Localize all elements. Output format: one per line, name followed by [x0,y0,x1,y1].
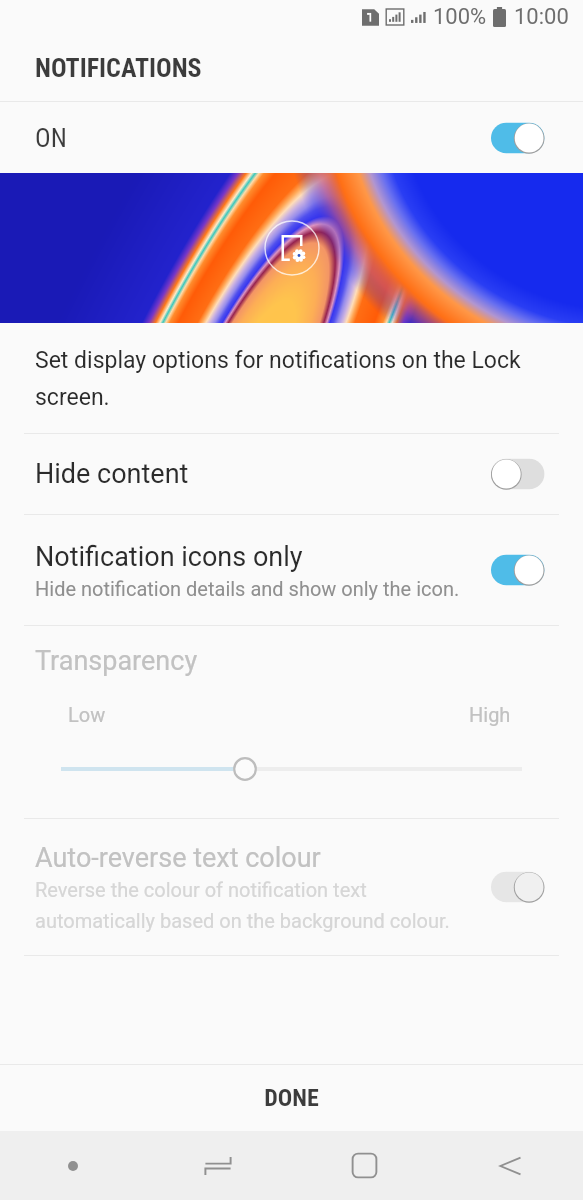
button[interactable]: Recent apps [145,1131,291,1200]
button[interactable]: Notification icons only [0,515,583,625]
staticText: Auto-reverse text colour [35,842,321,874]
staticText: 100% [433,4,487,30]
staticText: Hide content [35,458,189,490]
button[interactable] [0,752,583,786]
staticText: Reverse the colour of notification text … [35,878,450,932]
button[interactable]: Notification indicator [0,1131,145,1200]
staticText: Low [68,703,106,726]
button[interactable]: Home [291,1131,437,1200]
button[interactable]: Preview Lock screen [264,220,320,276]
staticText: 10:00 [514,4,569,30]
button[interactable]: Hide content [0,434,583,514]
button[interactable]: ON [0,102,583,173]
button[interactable]: Back [437,1131,583,1200]
staticText: Notification icons only [35,541,303,573]
staticText: High [469,703,511,726]
staticText: Hide notification details and show only … [35,577,460,600]
staticText: Set display options for notifications on… [35,347,533,410]
staticText: NOTIFICATIONS [35,53,202,83]
button[interactable]: DONE [0,1065,583,1131]
staticText: DONE [264,1084,319,1112]
staticText: ON [35,123,67,153]
button[interactable]: Auto-reverse text colour [0,819,583,955]
staticText: Transparency [35,645,198,677]
